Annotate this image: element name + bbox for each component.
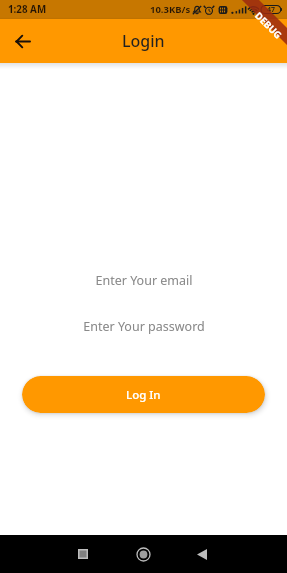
button[interactable]: Back bbox=[182, 535, 222, 573]
button[interactable]: Back bbox=[8, 26, 38, 56]
button[interactable]: Recents bbox=[63, 535, 103, 573]
staticText: Enter Your password bbox=[83, 318, 205, 335]
staticText: 1:28 AM bbox=[8, 3, 47, 16]
button[interactable]: Log In bbox=[22, 376, 265, 413]
button[interactable]: Home bbox=[123, 535, 163, 573]
staticText: DEBUG bbox=[252, 9, 285, 42]
staticText: Enter Your email bbox=[95, 272, 193, 289]
staticText: 10.3KB/s bbox=[150, 3, 191, 16]
staticText: Log In bbox=[126, 387, 161, 403]
staticText: Login bbox=[122, 30, 165, 52]
staticText: 47 bbox=[267, 5, 276, 15]
